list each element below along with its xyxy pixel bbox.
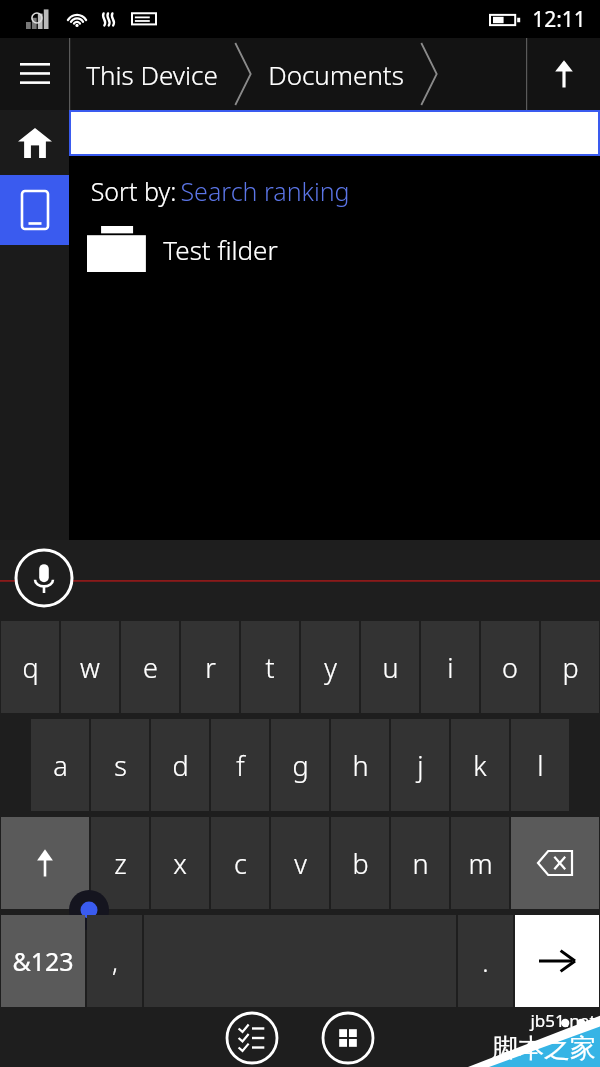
staticText: h <box>352 747 369 784</box>
button[interactable]: Backspace <box>511 817 599 909</box>
staticText: . <box>482 944 489 979</box>
button[interactable]: y <box>301 621 359 713</box>
button[interactable]: Enter <box>515 915 599 1007</box>
button[interactable]: , <box>87 915 142 1007</box>
staticText: u <box>382 649 399 686</box>
button[interactable]: &123 <box>1 915 85 1007</box>
staticText: k <box>473 747 487 784</box>
staticText: z <box>114 845 127 882</box>
staticText: jb51.net <box>530 1009 596 1032</box>
button[interactable]: n <box>391 817 449 909</box>
button[interactable]: k <box>451 719 509 811</box>
button[interactable]: Menu <box>0 38 69 110</box>
staticText: Search ranking <box>180 174 350 208</box>
button[interactable]: v <box>271 817 329 909</box>
button[interactable]: t <box>241 621 299 713</box>
button[interactable]: j <box>391 719 449 811</box>
staticText: 脚本之家 <box>492 1032 596 1065</box>
staticText: y <box>324 649 337 686</box>
button[interactable]: Voice input <box>14 548 74 608</box>
staticText: j <box>417 747 424 784</box>
staticText: c <box>234 845 247 882</box>
button[interactable]: Up <box>527 38 600 110</box>
button[interactable]: m <box>451 817 509 909</box>
staticText: This Device <box>86 57 218 92</box>
staticText: p <box>562 649 579 686</box>
button[interactable]: f <box>211 719 269 811</box>
staticText: q <box>22 649 39 686</box>
button[interactable]: Shift <box>1 817 89 909</box>
button[interactable]: g <box>271 719 329 811</box>
button[interactable]: w <box>61 621 119 713</box>
staticText: Documents <box>268 57 404 92</box>
staticText: v <box>294 845 307 882</box>
button[interactable]: r <box>181 621 239 713</box>
staticText: g <box>292 747 309 784</box>
button[interactable]: Test filder <box>69 222 600 276</box>
button[interactable]: This Device <box>86 57 218 92</box>
button[interactable]: x <box>151 817 209 909</box>
staticText: x <box>173 845 187 882</box>
staticText: , <box>112 944 118 979</box>
button[interactable]: Tasks <box>224 1010 280 1066</box>
button[interactable]: a <box>31 719 89 811</box>
staticText: b <box>352 845 369 882</box>
button[interactable]: q <box>1 621 59 713</box>
button[interactable]: b <box>331 817 389 909</box>
staticText: f <box>236 747 245 784</box>
button[interactable]: Sort by: <box>87 174 350 208</box>
button[interactable]: p <box>541 621 599 713</box>
staticText: m <box>468 845 493 882</box>
staticText: w <box>80 649 100 686</box>
button[interactable]: z <box>91 817 149 909</box>
button[interactable]: . <box>458 915 513 1007</box>
button[interactable]: This Device <box>0 175 69 245</box>
staticText: l <box>537 747 544 784</box>
button[interactable]: o <box>481 621 539 713</box>
staticText: s <box>114 747 127 784</box>
button[interactable]: l <box>511 719 569 811</box>
staticText: Test filder <box>163 232 278 267</box>
staticText: i <box>447 649 454 686</box>
staticText: n <box>412 845 429 882</box>
staticText: e <box>143 649 158 686</box>
button[interactable]: Search <box>69 110 600 156</box>
button[interactable]: h <box>331 719 389 811</box>
button[interactable]: s <box>91 719 149 811</box>
button[interactable]: Home <box>0 110 69 175</box>
staticText: r <box>205 649 216 686</box>
staticText: 12:11 <box>532 5 586 34</box>
staticText: d <box>172 747 189 784</box>
button[interactable]: e <box>121 621 179 713</box>
button[interactable]: u <box>361 621 419 713</box>
staticText: Sort by: <box>87 174 180 208</box>
button[interactable]: i <box>421 621 479 713</box>
button[interactable]: Apps <box>320 1010 376 1066</box>
button[interactable]: Documents <box>268 57 404 92</box>
button[interactable]: d <box>151 719 209 811</box>
staticText: a <box>53 747 68 784</box>
staticText: t <box>265 649 275 686</box>
staticText: o <box>502 649 518 686</box>
staticText: &123 <box>12 944 74 978</box>
button[interactable]: c <box>211 817 269 909</box>
